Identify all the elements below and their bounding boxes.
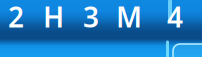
staticText: 3 xyxy=(83,0,99,35)
staticText: M xyxy=(116,0,142,35)
staticText: H xyxy=(43,0,64,35)
staticText: 2 xyxy=(8,0,24,35)
staticText: 4 xyxy=(167,0,183,35)
